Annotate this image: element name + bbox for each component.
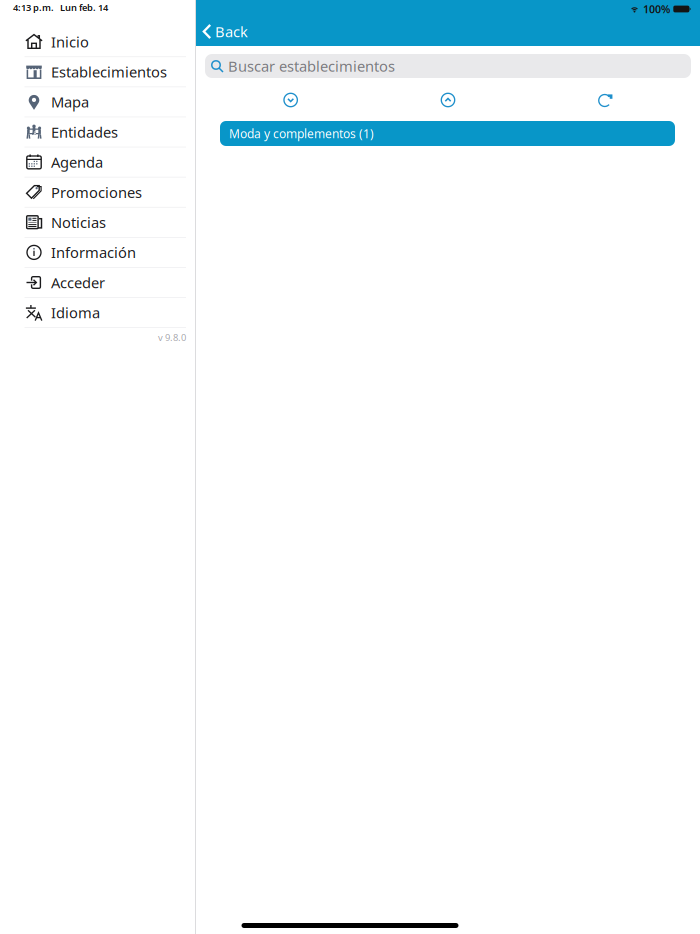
staticText: Buscar establecimientos	[228, 56, 395, 76]
staticText: Idioma	[51, 303, 100, 322]
staticText: Noticias	[51, 213, 106, 232]
staticText: Agenda	[51, 152, 103, 172]
button[interactable]: Mapa	[0, 87, 195, 117]
staticText: Inicio	[51, 32, 89, 51]
button[interactable]: Noticias	[0, 208, 195, 238]
button[interactable]: Idioma	[0, 298, 195, 328]
button[interactable]: Refresh	[527, 89, 684, 111]
staticText: v 9.8.0	[158, 331, 186, 344]
button[interactable]: Agenda	[0, 147, 195, 177]
button[interactable]: Buscar establecimientos	[205, 54, 691, 78]
staticText: Moda y complementos (1)	[229, 125, 374, 141]
button[interactable]: Acceder	[0, 268, 195, 298]
button[interactable]: Expand all	[369, 89, 527, 111]
button[interactable]: Back	[196, 17, 700, 45]
staticText: Back	[215, 22, 248, 41]
button[interactable]: Establecimientos	[0, 57, 195, 87]
staticText: Entidades	[51, 122, 118, 142]
button[interactable]: Moda y complementos (1)	[220, 121, 675, 146]
staticText: Mapa	[51, 92, 89, 112]
staticText: Información	[51, 243, 136, 262]
button[interactable]: Inicio	[0, 27, 195, 57]
staticText: Lun feb. 14	[60, 1, 108, 14]
staticText: 4:13 p.m.	[13, 1, 54, 14]
staticText: 100%	[643, 2, 670, 16]
staticText: Establecimientos	[51, 62, 167, 82]
button[interactable]: Entidades	[0, 117, 195, 147]
button[interactable]: Información	[0, 238, 195, 268]
button[interactable]: Collapse all	[212, 89, 369, 111]
staticText: Promociones	[51, 182, 142, 202]
staticText: Acceder	[51, 273, 105, 292]
button[interactable]: Promociones	[0, 177, 195, 208]
